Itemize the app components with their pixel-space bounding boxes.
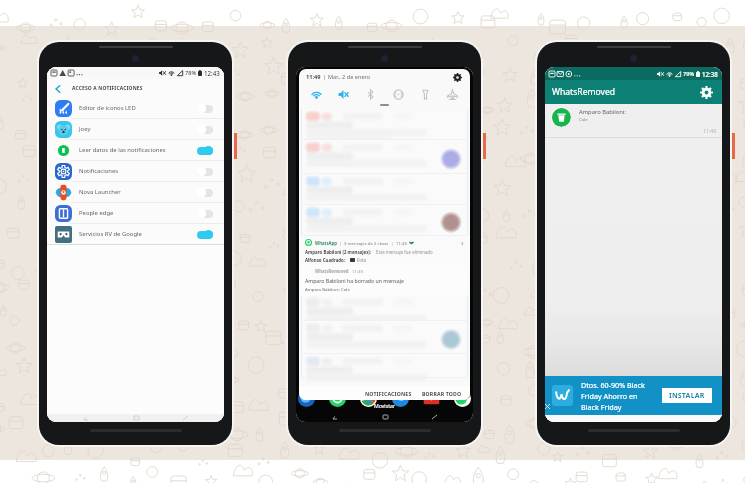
button[interactable] bbox=[301, 140, 468, 174]
button[interactable]: Toggle bbox=[197, 104, 213, 113]
button[interactable]: Toggle bbox=[197, 146, 213, 155]
staticText: Black Friday bbox=[581, 402, 622, 412]
button[interactable]: Settings bbox=[696, 82, 716, 102]
button[interactable]: Recents bbox=[75, 414, 97, 422]
button[interactable]: Quick setting 6 bbox=[443, 85, 462, 104]
staticText: Amparo Babiloni: Cule bbox=[305, 286, 350, 292]
staticText: | bbox=[391, 240, 394, 246]
staticText: 11:49 bbox=[396, 240, 407, 246]
button[interactable]: App 3 bbox=[359, 389, 378, 408]
button[interactable]: Settings bbox=[451, 71, 464, 84]
button[interactable]: Back bbox=[423, 413, 445, 421]
button[interactable]: Leer datos de las notificaciones bbox=[47, 140, 224, 160]
staticText: WhatsRemoved bbox=[315, 268, 349, 274]
button[interactable]: Quick setting 3 bbox=[361, 85, 380, 104]
button[interactable]: Quick setting 5 bbox=[416, 85, 435, 104]
staticText: Notificaciones bbox=[79, 167, 119, 175]
button[interactable]: Recents bbox=[324, 413, 346, 421]
staticText: Movistar bbox=[374, 402, 396, 409]
button[interactable]: Back bbox=[174, 414, 196, 422]
staticText: Joey bbox=[79, 125, 91, 133]
staticText: Mar., 2 de enero bbox=[328, 73, 371, 81]
button[interactable]: Back bbox=[47, 79, 69, 98]
staticText: 78% bbox=[185, 69, 197, 77]
staticText: 3 mensajes de 2 chats bbox=[344, 240, 389, 246]
button[interactable]: Toggle bbox=[197, 188, 213, 197]
button[interactable]: Editor de iconos LED bbox=[47, 98, 224, 118]
button[interactable]: Toggle bbox=[197, 167, 213, 176]
staticText: Dtos. 60-90% Black bbox=[581, 380, 645, 390]
staticText: NOTIFICACIONES bbox=[365, 390, 412, 397]
button[interactable]: Servicios RV de Google bbox=[47, 224, 224, 244]
staticText: Foto bbox=[357, 257, 367, 262]
button[interactable]: Amparo Babiloni: bbox=[545, 104, 722, 137]
staticText: 12:43 bbox=[204, 69, 220, 77]
staticText: WhatsApp bbox=[315, 240, 337, 246]
button[interactable]: INSTALAR bbox=[662, 388, 712, 403]
staticText: Nova Launcher bbox=[79, 188, 121, 196]
staticText: 11:49 bbox=[703, 127, 717, 134]
staticText: People edge bbox=[79, 209, 114, 217]
button[interactable]: Notificaciones bbox=[47, 161, 224, 181]
button[interactable]: App 4 bbox=[391, 389, 410, 408]
button[interactable]: Quick setting 4 bbox=[389, 85, 408, 104]
staticText: ACCESO A NOTIFICACIONES bbox=[72, 85, 143, 92]
button[interactable] bbox=[301, 295, 468, 321]
staticText: 11:49 bbox=[306, 73, 321, 81]
button[interactable]: NOTIFICACIONES bbox=[362, 387, 415, 400]
staticText: Amparo Babiloni ha borrado un mensaje bbox=[305, 277, 404, 284]
staticText: | bbox=[339, 240, 342, 246]
staticText: Amparo Babiloni (2 mensajes): bbox=[305, 249, 372, 255]
button[interactable] bbox=[301, 321, 468, 354]
button[interactable] bbox=[301, 354, 468, 378]
button[interactable]: WhatsRemoved bbox=[301, 265, 468, 295]
button[interactable] bbox=[301, 205, 468, 236]
button[interactable]: BORRAR TODO bbox=[419, 387, 470, 400]
button[interactable]: Joey bbox=[47, 119, 224, 139]
button[interactable]: Quick setting 1 bbox=[307, 85, 326, 104]
button[interactable] bbox=[301, 109, 468, 140]
staticText: Friday Ahorro en bbox=[581, 391, 638, 401]
button[interactable]: Home bbox=[125, 414, 147, 422]
staticText: Servicios RV de Google bbox=[79, 230, 142, 238]
staticText: INSTALAR bbox=[669, 391, 705, 401]
staticText: Este mensaje fue eliminado bbox=[376, 249, 433, 255]
button[interactable]: App 6 bbox=[453, 389, 472, 408]
staticText: 12:38 bbox=[702, 70, 718, 78]
staticText: WhatsRemoved bbox=[552, 86, 616, 98]
staticText: Leer datos de las notificaciones bbox=[79, 146, 166, 154]
staticText: Editor de iconos LED bbox=[79, 104, 136, 112]
button[interactable]: App 1 bbox=[297, 389, 316, 408]
button[interactable]: Toggle bbox=[197, 209, 213, 218]
button[interactable]: People edge bbox=[47, 203, 224, 223]
button[interactable]: WhatsApp bbox=[301, 236, 468, 265]
staticText: 79% bbox=[683, 70, 695, 78]
staticText: Amparo Babiloni: bbox=[579, 108, 626, 116]
staticText: Cule bbox=[579, 117, 588, 123]
button[interactable]: App 5 bbox=[422, 389, 441, 408]
button[interactable]: Home bbox=[374, 413, 396, 421]
staticText: 11:49 bbox=[352, 268, 363, 274]
staticText: BORRAR TODO bbox=[422, 390, 462, 397]
staticText: Alfonso Cuadrado: bbox=[305, 257, 346, 262]
button[interactable]: Toggle bbox=[197, 230, 213, 239]
staticText: 3 bbox=[461, 240, 464, 246]
button[interactable]: Toggle bbox=[197, 125, 213, 134]
button[interactable]: Quick setting 2 bbox=[334, 85, 353, 104]
button[interactable] bbox=[301, 174, 468, 205]
button[interactable]: Nova Launcher bbox=[47, 182, 224, 202]
button[interactable]: App 2 bbox=[328, 389, 347, 408]
